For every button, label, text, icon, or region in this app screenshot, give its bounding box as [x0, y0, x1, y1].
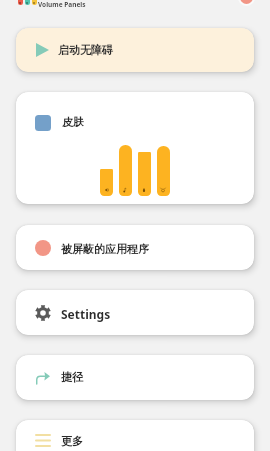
button[interactable]: Music volume — [119, 145, 132, 196]
button[interactable]: Profile — [240, 0, 253, 4]
button[interactable]: Notification volume — [138, 152, 151, 196]
button[interactable]: 更多 — [16, 420, 254, 451]
staticText: Settings — [61, 306, 111, 322]
button[interactable]: 启动无障碍 — [16, 28, 254, 72]
button[interactable]: 皮肤 — [16, 92, 254, 204]
button[interactable]: Media volume — [100, 169, 113, 196]
staticText: 捷径 — [61, 370, 83, 384]
staticText: Volume Panels — [38, 0, 86, 9]
button[interactable]: Volume Panels — [15, 0, 84, 11]
button[interactable]: Settings — [16, 290, 254, 335]
staticText: 更多 — [61, 434, 83, 448]
button[interactable]: Alarm volume — [157, 146, 170, 196]
button[interactable]: 捷径 — [16, 355, 254, 400]
staticText: 皮肤 — [62, 115, 84, 129]
staticText: 被屏蔽的应用程序 — [61, 242, 149, 256]
button[interactable]: 被屏蔽的应用程序 — [16, 225, 254, 270]
staticText: 启动无障碍 — [58, 43, 113, 57]
